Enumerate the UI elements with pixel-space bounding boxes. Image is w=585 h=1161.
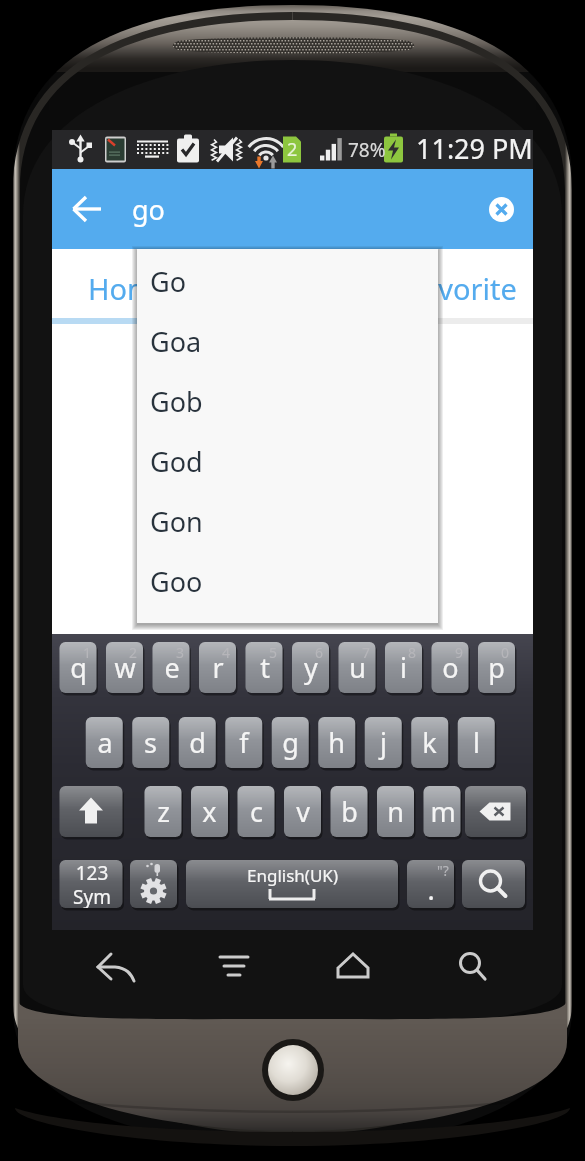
staticText: 11:29 PM [416, 130, 533, 167]
button[interactable]: w [106, 642, 143, 693]
button[interactable]: c [238, 786, 275, 837]
button[interactable]: Clear search [469, 169, 533, 249]
staticText: a [97, 724, 113, 761]
button[interactable]: Key [130, 860, 177, 908]
button[interactable]: d [179, 717, 216, 768]
button[interactable]: Gob [137, 371, 438, 431]
button[interactable]: 123 Sym [60, 860, 123, 908]
button[interactable]: a [86, 717, 123, 768]
button[interactable]: z [145, 786, 182, 837]
staticText: 2 [287, 137, 298, 162]
button[interactable]: Key [465, 786, 526, 837]
button[interactable]: l [458, 717, 495, 768]
staticText: 2 [129, 643, 138, 662]
button[interactable]: s [132, 717, 169, 768]
staticText: 5 [269, 643, 278, 662]
staticText: o [442, 649, 459, 686]
staticText: English(UK) [247, 864, 338, 887]
staticText: 7 [362, 643, 371, 662]
button[interactable]: Favorite [375, 249, 548, 318]
button[interactable]: Back [58, 169, 116, 249]
button[interactable]: Gon [137, 491, 438, 551]
staticText: v [296, 793, 310, 830]
button[interactable]: Back [73, 930, 153, 1000]
staticText: 0 [501, 643, 510, 662]
button[interactable]: k [411, 717, 448, 768]
staticText: God [150, 443, 203, 480]
staticText: d [189, 724, 206, 761]
button[interactable]: r [199, 642, 236, 693]
staticText: w [114, 649, 136, 686]
button[interactable]: Search [433, 930, 513, 1000]
button[interactable]: God [137, 431, 438, 491]
staticText: 1 [83, 643, 92, 662]
button[interactable]: j [365, 717, 402, 768]
button[interactable]: Goa [137, 311, 438, 371]
button[interactable]: n [377, 786, 414, 837]
button[interactable]: p [478, 642, 515, 693]
button[interactable]: t [246, 642, 283, 693]
staticText: k [422, 724, 437, 761]
button[interactable]: Go [137, 251, 438, 311]
button[interactable]: g [272, 717, 309, 768]
button[interactable]: English(UK) [186, 860, 398, 908]
staticText: x [202, 793, 217, 830]
staticText: Favorite [407, 269, 517, 308]
button[interactable]: Key [462, 860, 525, 908]
button[interactable]: i [385, 642, 422, 693]
staticText: go [132, 191, 165, 228]
button[interactable]: e [153, 642, 190, 693]
staticText: 9 [455, 643, 464, 662]
staticText: n [387, 793, 404, 830]
staticText: u [349, 649, 366, 686]
button[interactable]: . [407, 860, 454, 908]
staticText: g [282, 724, 299, 761]
staticText: t [260, 649, 270, 686]
button[interactable]: b [331, 786, 368, 837]
button[interactable]: Home [313, 930, 393, 1000]
staticText: p [488, 649, 505, 686]
staticText: m [430, 793, 456, 830]
button[interactable]: q [60, 642, 97, 693]
staticText: h [328, 724, 345, 761]
button[interactable]: x [191, 786, 228, 837]
staticText: Gon [150, 503, 203, 540]
staticText: l [473, 724, 480, 761]
staticText: 3 [176, 643, 185, 662]
staticText: s [144, 724, 157, 761]
button[interactable]: Home [262, 1039, 324, 1101]
staticText: z [157, 793, 170, 830]
staticText: Gob [150, 383, 203, 420]
button[interactable]: v [284, 786, 321, 837]
button[interactable]: Key [60, 786, 123, 837]
button[interactable]: u [339, 642, 376, 693]
button[interactable]: h [318, 717, 355, 768]
button[interactable]: m [424, 786, 461, 837]
staticText: Home [88, 269, 171, 308]
button[interactable]: Goo [137, 551, 438, 611]
staticText: 4 [222, 643, 231, 662]
staticText: j [380, 724, 387, 761]
button[interactable]: o [432, 642, 469, 693]
staticText: y [304, 649, 318, 686]
staticText: r [212, 649, 224, 686]
staticText: q [70, 649, 87, 686]
staticText: 6 [315, 643, 324, 662]
staticText: Go [150, 263, 186, 300]
staticText: 8 [408, 643, 417, 662]
button[interactable]: Menu [194, 930, 274, 1000]
staticText: c [250, 793, 263, 830]
button[interactable]: y [292, 642, 329, 693]
staticText: "? [437, 861, 449, 880]
staticText: 123 Sym [73, 860, 111, 908]
staticText: f [239, 724, 249, 761]
button[interactable]: f [225, 717, 262, 768]
staticText: Goo [150, 563, 203, 600]
staticText: e [164, 649, 180, 686]
staticText: b [341, 793, 358, 830]
button[interactable]: Home [43, 249, 216, 318]
staticText: . [427, 871, 435, 908]
staticText: 78% [348, 137, 386, 163]
